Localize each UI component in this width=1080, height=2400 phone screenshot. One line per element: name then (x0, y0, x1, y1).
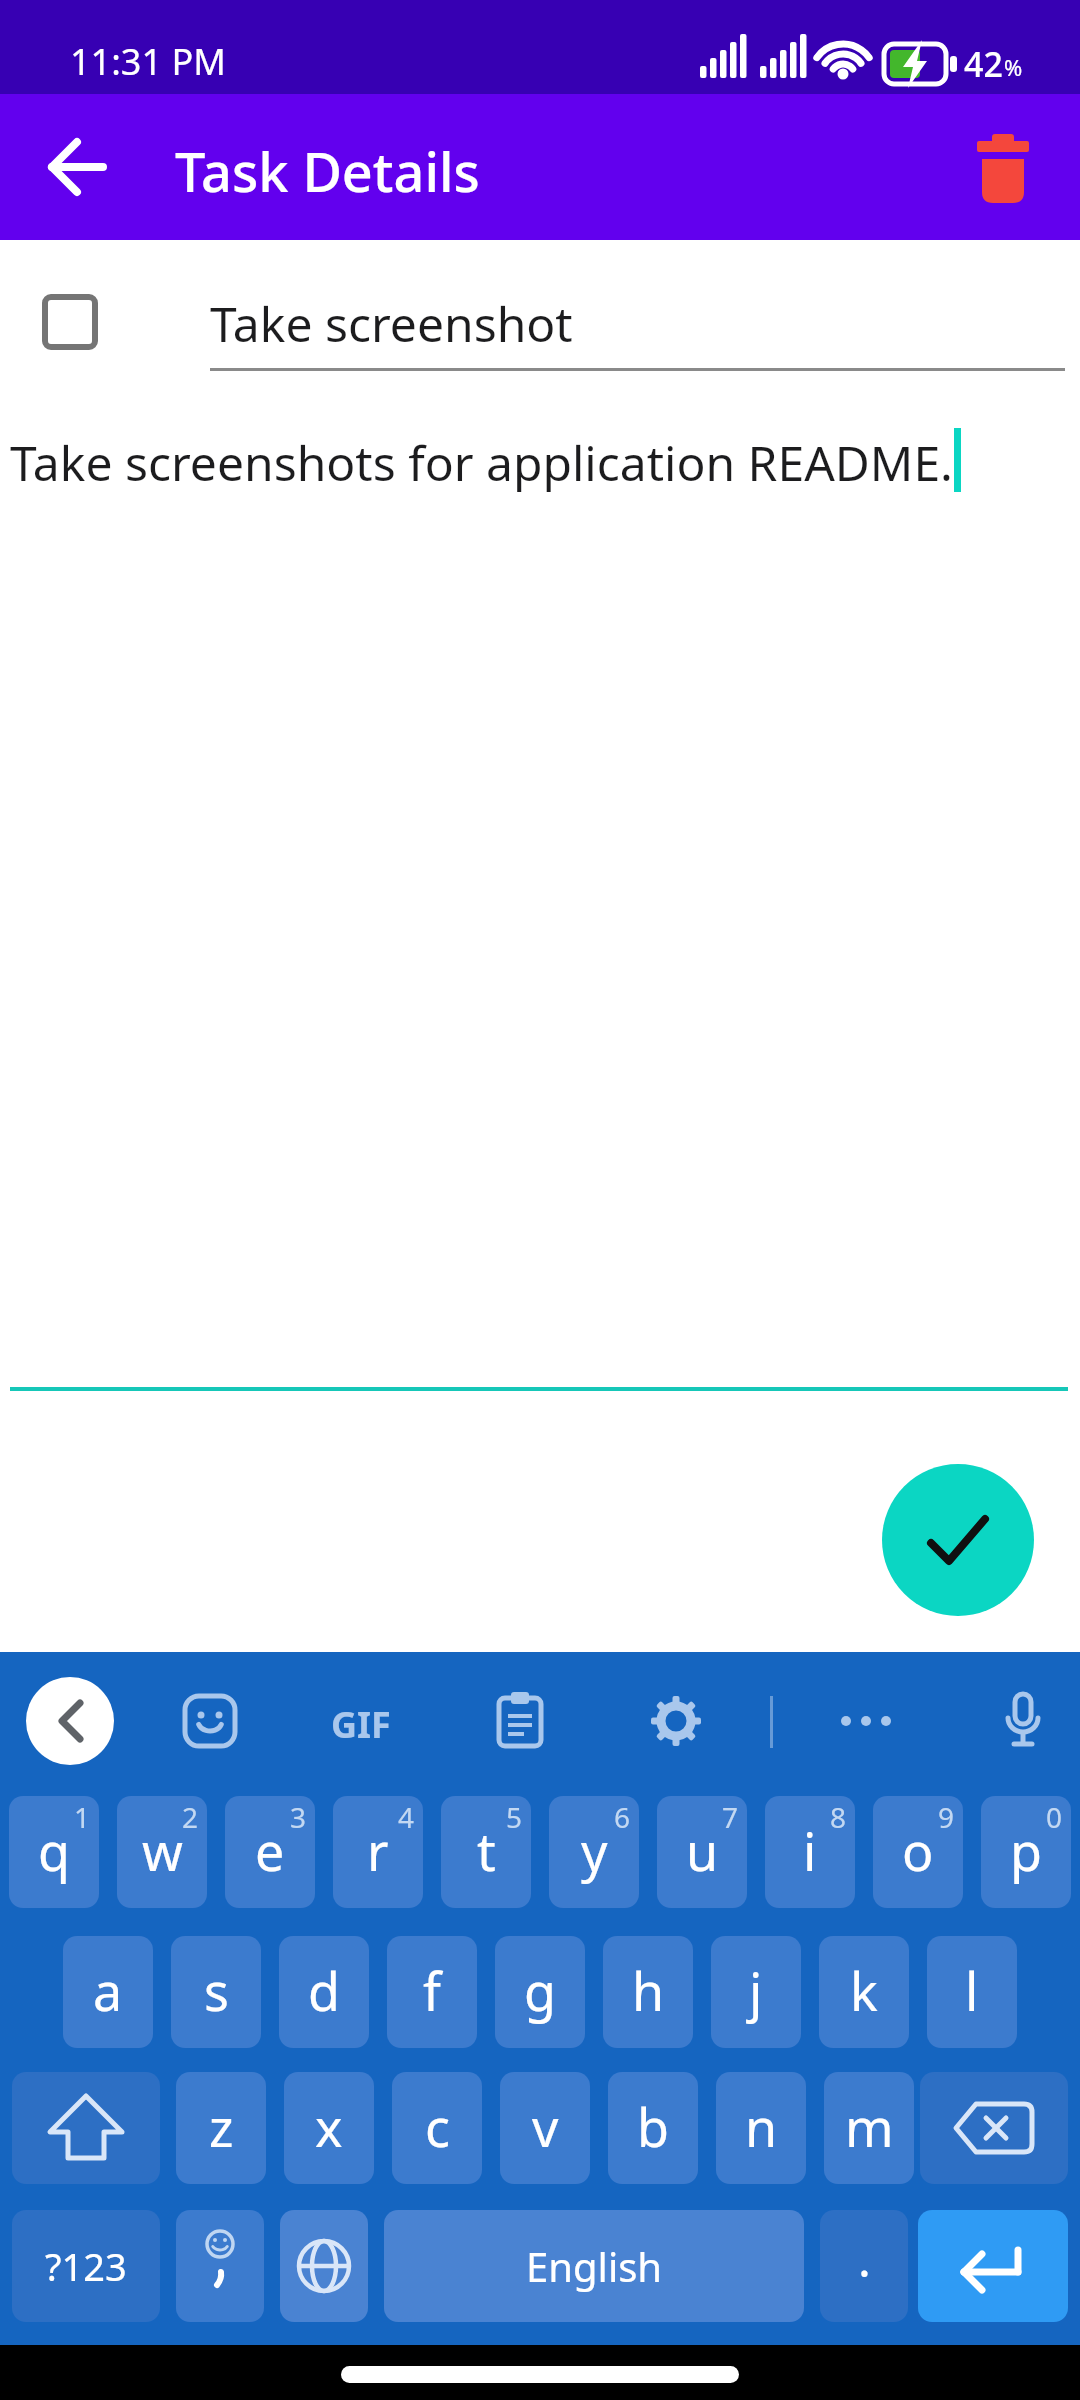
staticText: n (745, 2091, 778, 2162)
staticText: k (850, 1955, 878, 2026)
button[interactable] (12, 2072, 160, 2184)
button[interactable]: y (549, 1796, 639, 1908)
staticText: 4 (398, 1798, 415, 1836)
button[interactable]: p (981, 1796, 1071, 1908)
button[interactable]: l (927, 1936, 1017, 2048)
button[interactable] (882, 1464, 1034, 1616)
staticText: 1 (74, 1798, 91, 1836)
staticText: 42 (964, 41, 1003, 87)
staticText: l (965, 1955, 979, 2026)
button[interactable] (963, 134, 1043, 204)
button[interactable]: r (333, 1796, 423, 1908)
button[interactable]: f (387, 1936, 477, 2048)
button[interactable] (492, 1692, 548, 1748)
staticText: d (308, 1955, 340, 2026)
staticText: % (1004, 52, 1023, 82)
staticText: 3 (290, 1798, 307, 1836)
button[interactable]: x (284, 2072, 374, 2184)
staticText: y (581, 1815, 608, 1886)
button[interactable]: z (176, 2072, 266, 2184)
button[interactable] (30, 282, 110, 362)
staticText: e (255, 1815, 285, 1886)
button[interactable] (918, 2210, 1068, 2322)
button[interactable] (280, 2210, 368, 2322)
button[interactable]: q (9, 1796, 99, 1908)
staticText: i (803, 1815, 817, 1886)
button[interactable]: v (500, 2072, 590, 2184)
button[interactable]: . (820, 2210, 908, 2322)
button[interactable]: Take screenshot (210, 291, 573, 356)
button[interactable]: o (873, 1796, 963, 1908)
staticText: w (142, 1815, 183, 1886)
button[interactable]: d (279, 1936, 369, 2048)
staticText: x (315, 2091, 343, 2162)
staticText: 6 (614, 1798, 631, 1836)
staticText: Task Details (175, 134, 480, 208)
button[interactable]: GIF (331, 1700, 391, 1749)
staticText: o (902, 1815, 934, 1886)
button[interactable] (648, 1693, 704, 1749)
button[interactable]: c (392, 2072, 482, 2184)
staticText: h (632, 1955, 665, 2026)
button[interactable] (26, 1677, 114, 1765)
button[interactable]: w (117, 1796, 207, 1908)
staticText: j (749, 1955, 763, 2026)
button[interactable]: e (225, 1796, 315, 1908)
staticText: 0 (1046, 1798, 1063, 1836)
staticText: Take screenshots for application README. (10, 430, 953, 495)
button[interactable]: ?123 (12, 2210, 160, 2322)
staticText: p (1010, 1815, 1042, 1886)
staticText: a (93, 1955, 123, 2026)
staticText: z (209, 2091, 234, 2162)
staticText: 5 (506, 1798, 523, 1836)
button[interactable]: j (711, 1936, 801, 2048)
button[interactable]: b (608, 2072, 698, 2184)
staticText: r (367, 1815, 389, 1886)
button[interactable]: m (824, 2072, 914, 2184)
button[interactable]: h (603, 1936, 693, 2048)
staticText: g (524, 1955, 556, 2026)
staticText: u (686, 1815, 719, 1886)
staticText: m (845, 2091, 894, 2162)
staticText: s (204, 1955, 229, 2026)
staticText: v (532, 2091, 559, 2162)
button[interactable] (838, 1693, 894, 1749)
staticText: ?123 (45, 2240, 127, 2292)
button[interactable]: k (819, 1936, 909, 2048)
button[interactable]: English (384, 2210, 804, 2322)
staticText: b (637, 2091, 669, 2162)
staticText: 7 (722, 1798, 739, 1836)
button[interactable] (182, 1693, 238, 1749)
button[interactable]: u (657, 1796, 747, 1908)
button[interactable] (995, 1692, 1051, 1748)
button[interactable]: s (171, 1936, 261, 2048)
staticText: 11:31 PM (70, 37, 226, 86)
button[interactable]: t (441, 1796, 531, 1908)
button[interactable]: g (495, 1936, 585, 2048)
staticText: q (38, 1815, 70, 1886)
staticText: English (526, 2239, 663, 2293)
button[interactable] (176, 2210, 264, 2322)
staticText: . (858, 2226, 871, 2291)
button[interactable]: n (716, 2072, 806, 2184)
button[interactable]: i (765, 1796, 855, 1908)
staticText: 9 (938, 1798, 955, 1836)
staticText: 8 (830, 1798, 847, 1836)
staticText: 2 (182, 1798, 199, 1836)
button[interactable] (920, 2072, 1068, 2184)
button[interactable] (30, 122, 120, 212)
button[interactable]: a (63, 1936, 153, 2048)
staticText: t (477, 1815, 496, 1886)
staticText: f (423, 1955, 441, 2026)
staticText: c (425, 2091, 450, 2162)
